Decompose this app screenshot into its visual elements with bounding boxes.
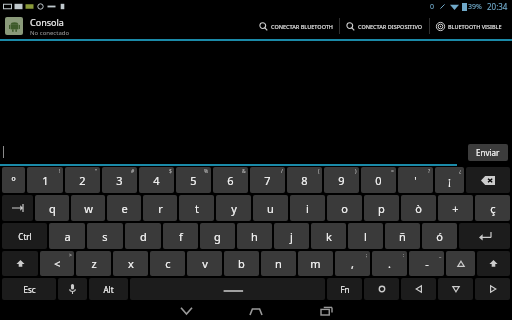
staticText: l xyxy=(364,229,367,244)
button[interactable]: BLUETOOTH VISIBLE xyxy=(430,13,508,39)
button[interactable]: Fn xyxy=(327,278,362,300)
button[interactable]: Shift xyxy=(2,251,38,276)
button[interactable]: 4 xyxy=(139,167,174,193)
button[interactable]: b xyxy=(224,251,259,276)
button[interactable]: Enviar xyxy=(468,144,508,161)
button[interactable]: c xyxy=(150,251,185,276)
button[interactable]: v xyxy=(187,251,222,276)
button[interactable]: 3 xyxy=(102,167,137,193)
button[interactable]: 8 xyxy=(287,167,322,193)
button[interactable]: < xyxy=(40,251,74,276)
button[interactable]: n xyxy=(261,251,296,276)
button[interactable]: 1 xyxy=(27,167,63,193)
staticText: ¿ xyxy=(459,168,462,175)
button[interactable]: Recents xyxy=(291,301,361,320)
button[interactable]: Settings xyxy=(364,278,399,300)
staticText: . xyxy=(388,256,391,271)
staticText: r xyxy=(158,201,163,216)
button[interactable]: Esc xyxy=(2,278,56,300)
staticText: ) xyxy=(355,168,357,175)
button[interactable]: Space xyxy=(130,278,325,300)
staticText: : xyxy=(403,252,405,259)
button[interactable]: ¡ xyxy=(435,167,464,193)
button[interactable]: a xyxy=(49,223,85,249)
button[interactable]: k xyxy=(311,223,346,249)
button[interactable]: q xyxy=(35,195,69,221)
button[interactable]: Enter xyxy=(459,223,510,249)
button[interactable]: º xyxy=(2,167,25,193)
button[interactable]: 6 xyxy=(213,167,248,193)
button[interactable]: h xyxy=(237,223,272,249)
button[interactable]: f xyxy=(163,223,198,249)
button[interactable]: g xyxy=(200,223,235,249)
staticText: 20:34 xyxy=(487,1,508,12)
staticText: ç xyxy=(490,201,496,216)
button[interactable]: Alt xyxy=(89,278,128,300)
staticText: p xyxy=(378,201,385,216)
staticText: a xyxy=(64,229,71,244)
button[interactable]: u xyxy=(253,195,288,221)
button[interactable]: l xyxy=(348,223,383,249)
button[interactable]: s xyxy=(87,223,123,249)
button[interactable]: Down xyxy=(438,278,473,300)
button[interactable]: Up xyxy=(446,251,475,276)
staticText: % xyxy=(204,168,209,175)
button[interactable]: t xyxy=(179,195,214,221)
staticText: ; xyxy=(366,252,368,259)
button[interactable]: Back xyxy=(151,301,221,320)
button[interactable]: 9 xyxy=(324,167,359,193)
button[interactable]: j xyxy=(274,223,309,249)
staticText: & xyxy=(242,168,246,175)
staticText: i xyxy=(306,201,309,216)
button[interactable]: z xyxy=(76,251,111,276)
button[interactable]: ç xyxy=(475,195,510,221)
staticText: o xyxy=(341,201,348,216)
button[interactable]: Backspace xyxy=(466,167,510,193)
staticText: x xyxy=(128,256,134,271)
button[interactable]: App icon xyxy=(5,17,23,35)
staticText: ( xyxy=(318,168,320,175)
staticText: q xyxy=(49,201,56,216)
button[interactable]: Right xyxy=(475,278,510,300)
button[interactable]: Voice input xyxy=(58,278,87,300)
staticText: 39% xyxy=(468,2,482,12)
button[interactable]: o xyxy=(327,195,362,221)
button[interactable]: . xyxy=(372,251,407,276)
button[interactable]: Shift xyxy=(477,251,510,276)
button[interactable]: p xyxy=(364,195,399,221)
button[interactable]: ó xyxy=(422,223,457,249)
button[interactable]: y xyxy=(216,195,251,221)
staticText: ñ xyxy=(399,229,406,244)
button[interactable]: 7 xyxy=(250,167,285,193)
button[interactable]: - xyxy=(409,251,444,276)
button[interactable]: + xyxy=(438,195,473,221)
button[interactable]: m xyxy=(298,251,333,276)
button[interactable]: CONECTAR DISPOSITIVO xyxy=(340,13,429,39)
button[interactable]: d xyxy=(125,223,161,249)
button[interactable]: w xyxy=(71,195,105,221)
button[interactable]: ò xyxy=(401,195,436,221)
staticText: / xyxy=(281,168,283,175)
staticText: m xyxy=(310,256,321,271)
button[interactable]: ñ xyxy=(385,223,420,249)
staticText: n xyxy=(275,256,282,271)
button[interactable]: x xyxy=(113,251,148,276)
staticText: CONECTAR DISPOSITIVO xyxy=(358,23,423,30)
button[interactable]: 5 xyxy=(176,167,211,193)
button[interactable]: Left xyxy=(401,278,436,300)
button[interactable]: Ctrl xyxy=(2,223,47,249)
button[interactable]: e xyxy=(107,195,141,221)
button[interactable]: Home xyxy=(221,301,291,320)
button[interactable]: CONECTAR BLUETOOTH xyxy=(253,13,339,39)
staticText: 5 xyxy=(190,173,197,188)
staticText: + xyxy=(452,201,459,216)
button[interactable]: 2 xyxy=(65,167,100,193)
button[interactable]: i xyxy=(290,195,325,221)
button[interactable]: r xyxy=(143,195,177,221)
staticText: ! xyxy=(59,168,61,175)
button[interactable]: , xyxy=(335,251,370,276)
staticText: ò xyxy=(415,201,422,216)
button[interactable]: 0 xyxy=(361,167,396,193)
button[interactable]: Tab xyxy=(2,195,33,221)
button[interactable]: ' xyxy=(398,167,433,193)
